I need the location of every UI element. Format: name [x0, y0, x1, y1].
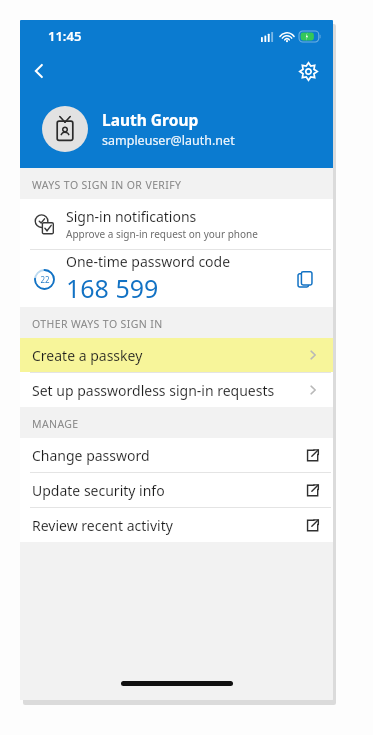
staticText: MANAGE — [32, 417, 79, 431]
button[interactable]: Settings — [291, 54, 325, 88]
button[interactable]: Update security info — [20, 473, 333, 507]
staticText: Approve a sign-in request on your phone — [66, 227, 258, 241]
staticText: Review recent activity — [32, 516, 306, 535]
staticText: sampleuser@lauth.net — [102, 132, 235, 149]
staticText: 11:45 — [48, 27, 82, 45]
button[interactable]: Sign-in notifications — [20, 199, 333, 249]
staticText: Create a passkey — [32, 346, 307, 365]
button[interactable]: Copy code — [291, 265, 319, 293]
staticText: 22 — [40, 274, 50, 285]
staticText: WAYS TO SIGN IN OR VERIFY — [32, 178, 182, 192]
staticText: Change password — [32, 446, 306, 465]
staticText: Update security info — [32, 481, 306, 500]
button[interactable]: Change password — [20, 438, 333, 472]
button[interactable]: Set up passwordless sign-in requests — [20, 373, 333, 407]
staticText: One-time password code — [66, 252, 231, 271]
button[interactable]: Review recent activity — [20, 508, 333, 542]
button[interactable]: Lauth Group — [20, 90, 333, 168]
staticText: Lauth Group — [102, 109, 199, 130]
button[interactable]: 22 — [20, 250, 333, 307]
button[interactable]: Create a passkey — [20, 338, 333, 372]
button[interactable]: Back — [20, 52, 58, 90]
staticText: OTHER WAYS TO SIGN IN — [32, 317, 163, 331]
staticText: 168 599 — [66, 271, 159, 305]
staticText: Sign-in notifications — [66, 207, 197, 226]
staticText: Set up passwordless sign-in requests — [32, 381, 307, 400]
